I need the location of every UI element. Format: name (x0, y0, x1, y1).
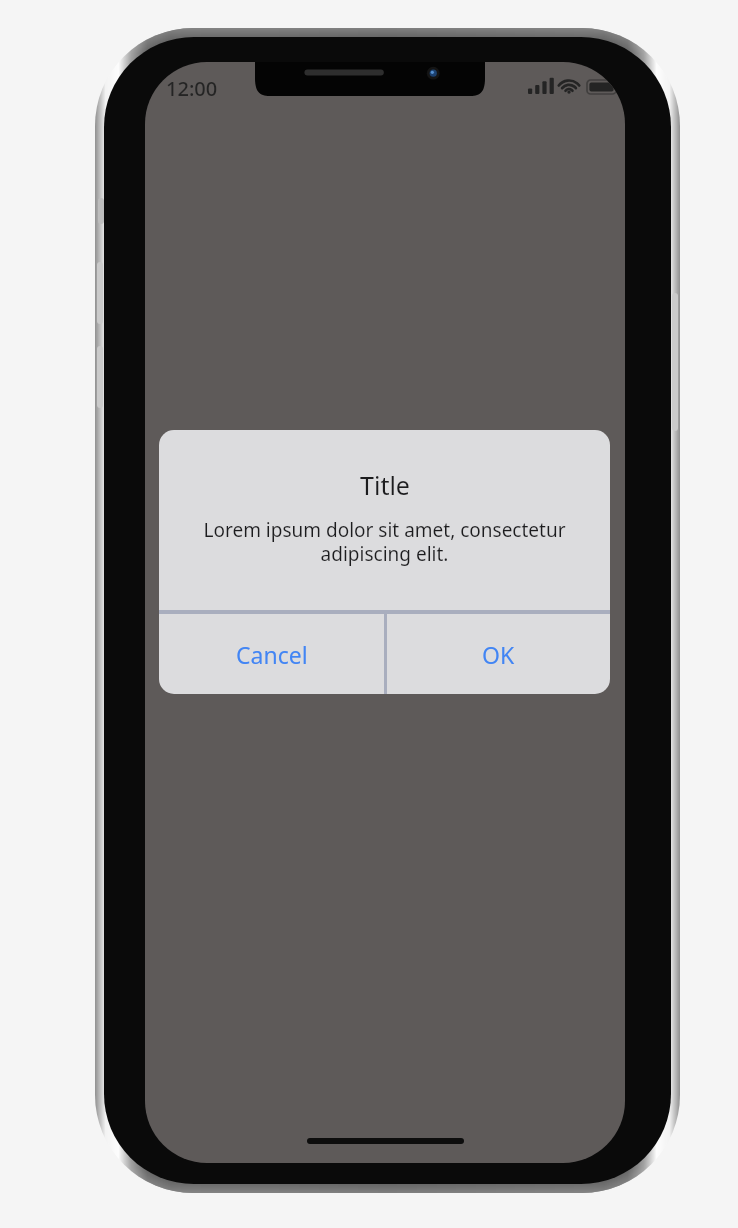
button[interactable]: Cancel (159, 614, 384, 694)
button[interactable]: OK (387, 614, 610, 694)
staticText: Lorem ipsum dolor sit amet, consectetur … (179, 517, 590, 566)
other: Signal, Wi-Fi and battery status (528, 75, 622, 99)
staticText: Cancel (236, 639, 308, 670)
staticText: 12:00 (166, 75, 218, 102)
staticText: OK (482, 639, 515, 670)
staticText: Title (360, 468, 410, 502)
